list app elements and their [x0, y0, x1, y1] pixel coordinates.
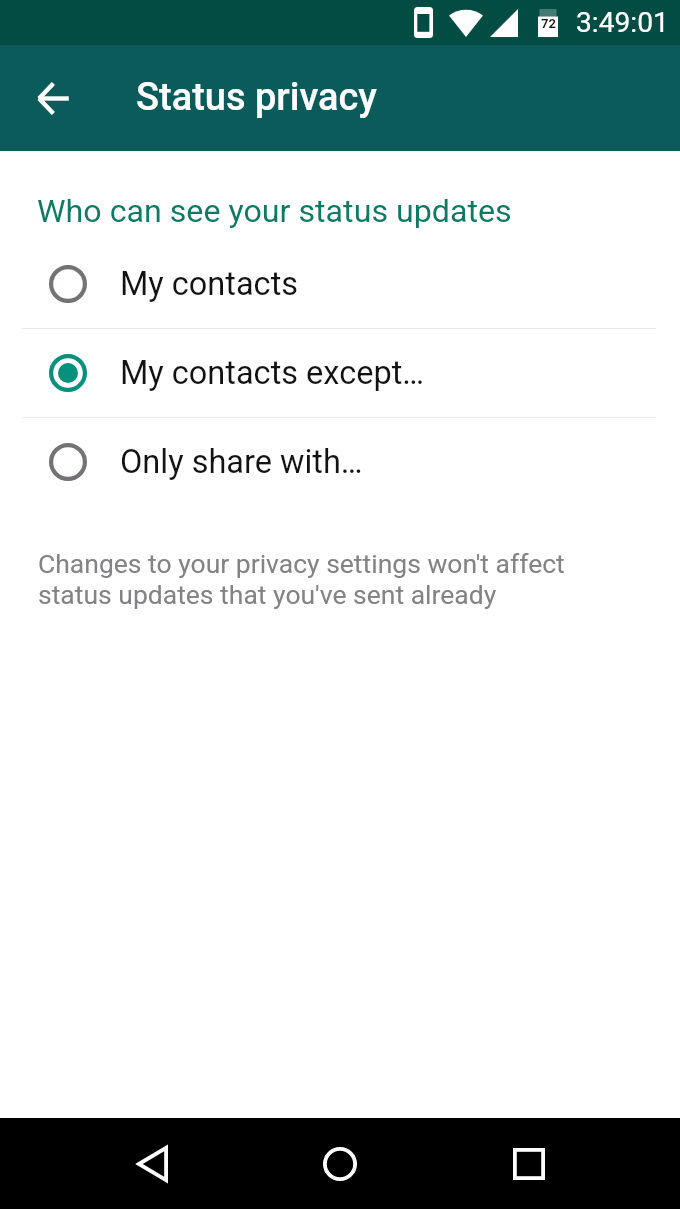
staticText: My contacts: [120, 265, 299, 303]
staticText: Changes to your privacy settings won't a…: [38, 548, 590, 611]
button[interactable]: My contacts except…: [0, 329, 680, 417]
button[interactable]: Home: [297, 1121, 383, 1207]
button[interactable]: My contacts: [0, 240, 680, 328]
button[interactable]: Back: [109, 1121, 195, 1207]
staticText: 72: [541, 16, 556, 31]
button[interactable]: Only share with…: [0, 418, 680, 506]
staticText: Only share with…: [120, 443, 363, 481]
button[interactable]: Back: [19, 64, 87, 132]
button[interactable]: Recent apps: [486, 1121, 572, 1207]
staticText: Status privacy: [136, 75, 377, 120]
staticText: My contacts except…: [120, 354, 425, 392]
staticText: 3:49:01: [576, 6, 669, 39]
staticText: Who can see your status updates: [37, 192, 512, 230]
